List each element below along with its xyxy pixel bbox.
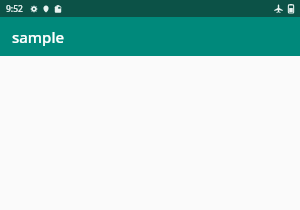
staticText: 9:52 xyxy=(6,3,23,15)
staticText: sample xyxy=(12,27,65,47)
